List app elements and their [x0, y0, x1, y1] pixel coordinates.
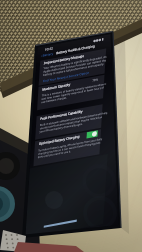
button[interactable]: Phone showing Battery Health and Chargin… [0, 0, 142, 252]
